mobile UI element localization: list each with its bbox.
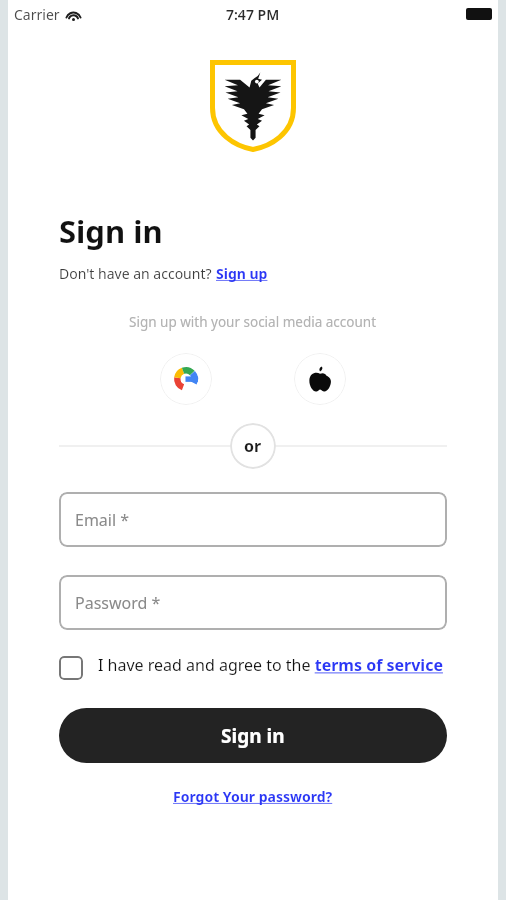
- staticText: Sign up: [216, 264, 268, 283]
- button[interactable]: Email *: [59, 492, 447, 547]
- button[interactable]: Forgot Your password?: [173, 787, 333, 806]
- staticText: I have read and agree to the terms of se…: [98, 654, 443, 676]
- button[interactable]: Sign in: [59, 708, 447, 763]
- staticText: 7:47 PM: [226, 5, 280, 24]
- staticText: Sign in: [221, 723, 285, 749]
- staticText: or: [244, 435, 262, 457]
- staticText: Sign in: [59, 210, 163, 252]
- staticText: Password *: [75, 592, 161, 614]
- button[interactable]: Sign up: [216, 264, 268, 283]
- button[interactable]: Sign in with Google: [160, 353, 212, 405]
- button[interactable]: Agree to terms of service: [59, 654, 447, 680]
- staticText: Forgot Your password?: [173, 787, 333, 806]
- staticText: Carrier: [14, 5, 60, 24]
- other: Agree to terms of service: [59, 656, 83, 680]
- staticText: Sign up with your social media account: [129, 313, 377, 331]
- staticText: Email *: [75, 509, 130, 531]
- button[interactable]: Password *: [59, 575, 447, 630]
- staticText: Don't have an account?: [59, 264, 216, 283]
- button[interactable]: Sign in with Apple: [294, 353, 346, 405]
